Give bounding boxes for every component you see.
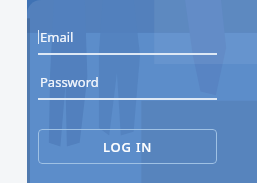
other: Screen edge [0, 0, 40, 183]
staticText: Password [40, 73, 99, 91]
button[interactable]: Email [38, 28, 217, 55]
staticText: LOG IN [103, 138, 153, 156]
staticText: Email [40, 28, 74, 46]
button[interactable]: Password [38, 73, 217, 100]
button[interactable]: LOG IN [38, 129, 217, 164]
